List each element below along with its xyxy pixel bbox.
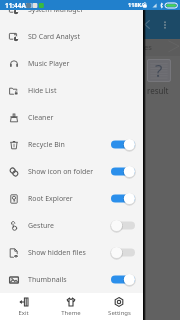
staticText: Hide List [28,86,135,96]
button[interactable]: Toggle [111,246,135,259]
button[interactable]: Theme [47,293,95,320]
button[interactable]: Recycle Bin [0,131,143,158]
button[interactable]: More options [159,19,171,31]
staticText: Settings [108,309,131,317]
staticText: 11:44AM [5,1,32,10]
button[interactable]: Back [140,17,155,32]
staticText: Exit [18,309,29,317]
staticText: Show icon on folder [28,167,111,177]
staticText: result [147,85,169,96]
staticText: Thumbnails [28,275,111,285]
button[interactable]: Toggle [111,192,135,205]
button[interactable]: Cleaner [0,104,143,131]
staticText: Theme [61,309,81,317]
staticText: ? [155,59,163,82]
staticText: es [144,42,152,52]
button[interactable]: SD Card Analyst [0,23,143,50]
staticText: Recycle Bin [28,140,111,150]
button[interactable]: Toggle [111,273,135,286]
staticText: System Manager [28,5,135,15]
staticText: Show hidden files [28,248,111,258]
button[interactable]: Show icon on folder [0,158,143,185]
staticText: SD Card Analyst [28,32,135,42]
staticText: Root Explorer [28,194,111,204]
staticText: 118K/s [128,1,147,9]
button[interactable]: Thumbnails [0,266,143,293]
button[interactable]: Root Explorer [0,185,143,212]
button[interactable]: Toggle [111,138,135,151]
button[interactable]: Music Player [0,50,143,77]
staticText: Cleaner [28,113,135,123]
button[interactable]: Settings [95,293,143,320]
button[interactable]: Hide List [0,77,143,104]
button[interactable]: Toggle [111,165,135,178]
staticText: Gesture [28,221,111,231]
button[interactable]: Show hidden files [0,239,143,266]
button[interactable]: Exit [0,293,47,320]
staticText: Music Player [28,59,135,69]
button[interactable]: Toggle [111,219,135,232]
button[interactable]: Gesture [0,212,143,239]
button[interactable]: System Manager [0,0,143,23]
